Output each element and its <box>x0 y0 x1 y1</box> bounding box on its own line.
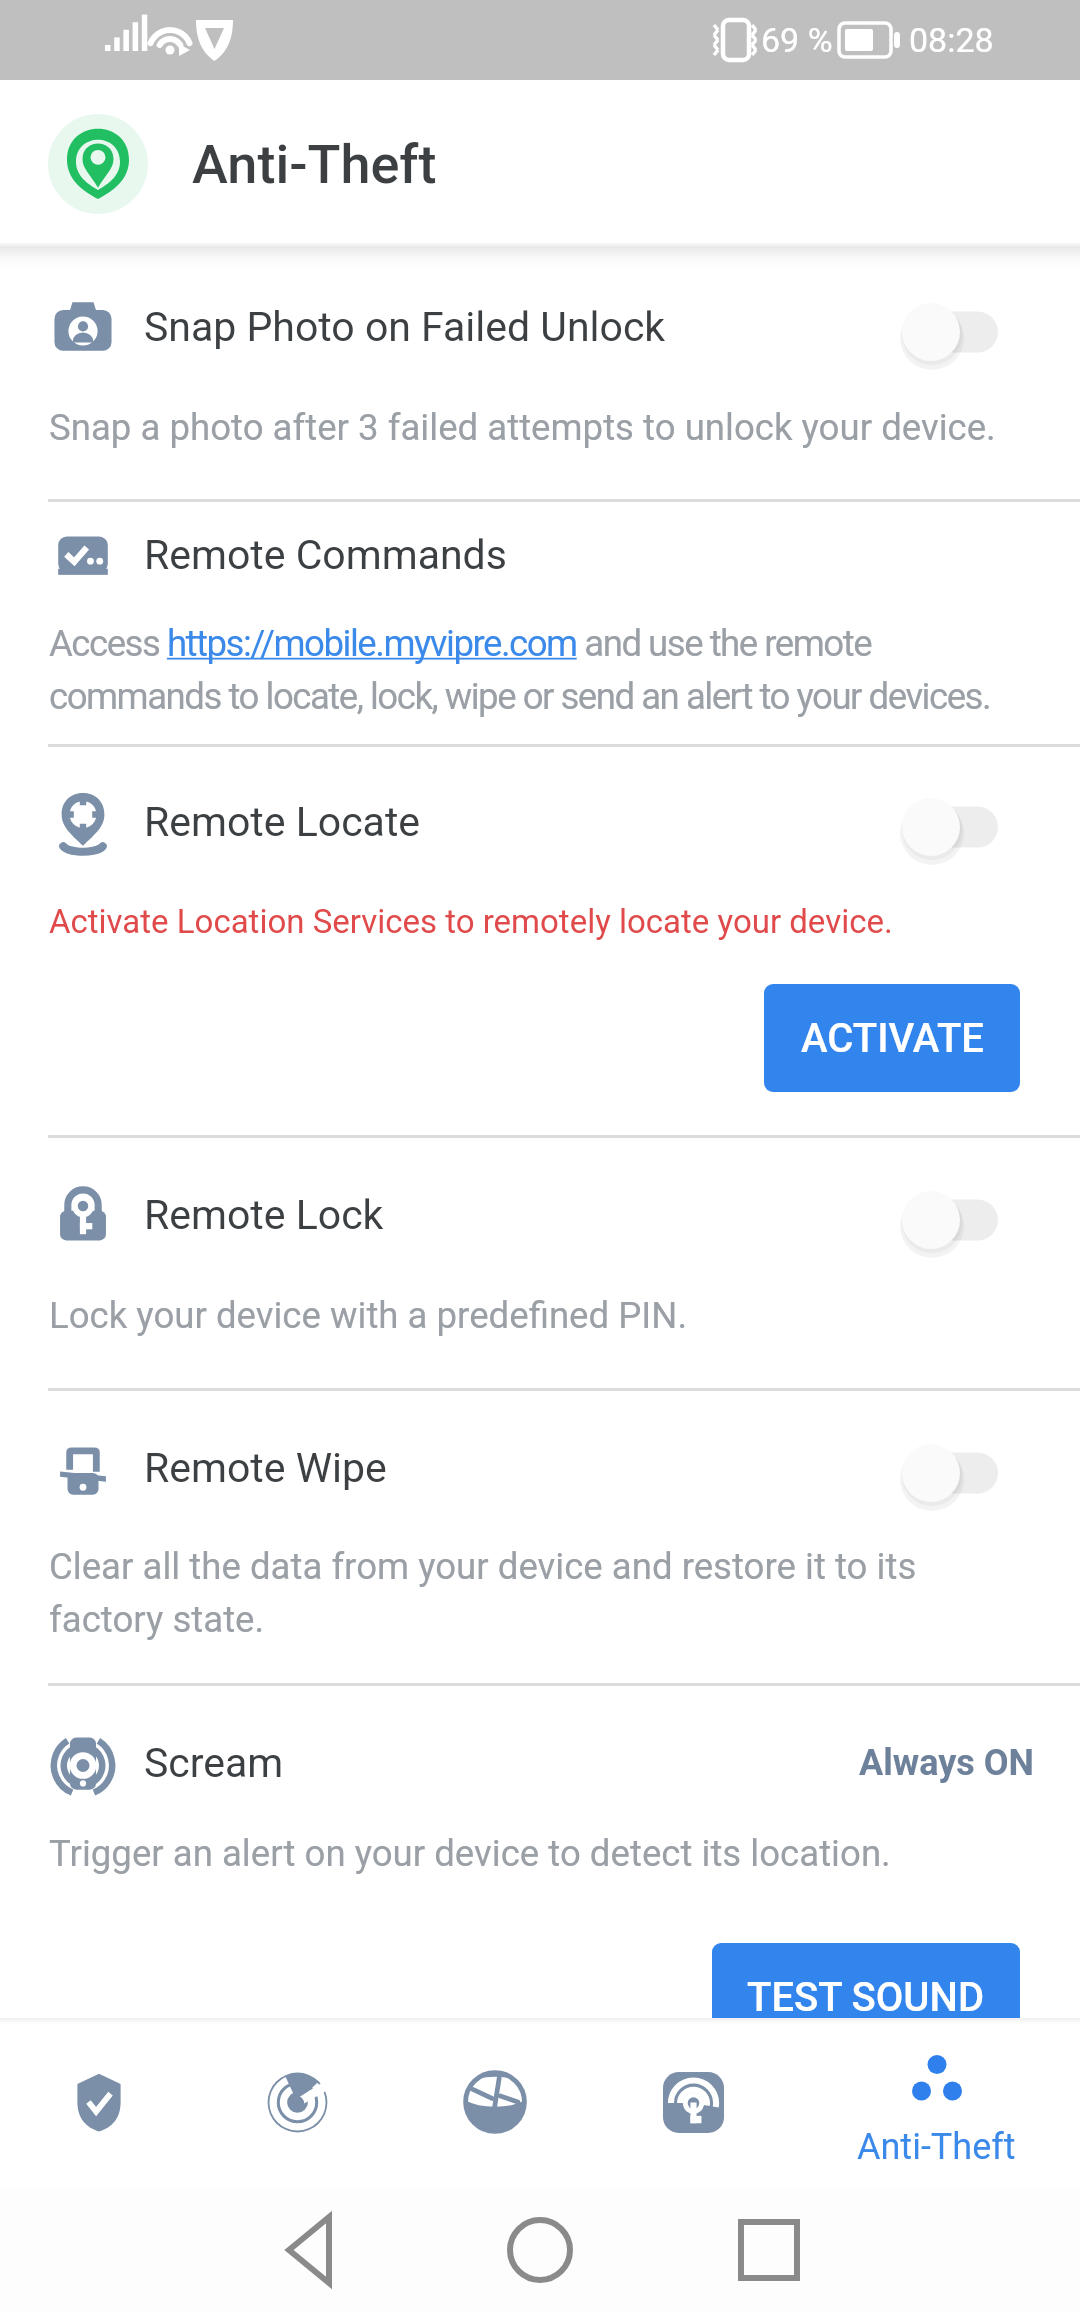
button[interactable]: Remote Commands <box>0 519 1080 591</box>
staticText: TEST SOUND <box>747 1974 985 2021</box>
staticText: 69 % <box>761 20 833 60</box>
button[interactable]: Remote Wipe <box>0 1432 1080 1504</box>
button[interactable]: Toggle <box>914 1179 1034 1251</box>
button[interactable]: ACTIVATE <box>764 984 1020 1092</box>
staticText: Snap Photo on Failed Unlock <box>144 303 666 351</box>
button[interactable]: Snap Photo on Failed Unlock <box>0 291 1080 363</box>
staticText: Snap a photo after 3 failed attempts to … <box>49 406 996 449</box>
staticText: Trigger an alert on your device to detec… <box>49 1832 891 1875</box>
button[interactable]: Privacy <box>594 2018 792 2188</box>
button[interactable]: Scream <box>0 1727 1080 1799</box>
staticText: Always ON <box>859 1742 1034 1784</box>
staticText: Lock your device with a predefined PIN. <box>49 1294 688 1337</box>
button[interactable]: TEST SOUND <box>712 1943 1020 2051</box>
staticText: Remote Lock <box>144 1191 384 1239</box>
staticText: Remote Locate <box>144 798 421 846</box>
staticText: Scream <box>144 1739 284 1787</box>
staticText: Activate Location Services to remotely l… <box>49 902 893 941</box>
staticText: ACTIVATE <box>801 1015 984 1062</box>
button[interactable]: Toggle <box>914 291 1034 363</box>
staticText: Anti-Theft <box>192 133 437 196</box>
staticText: Remote Wipe <box>144 1444 387 1492</box>
button[interactable]: Toggle <box>914 1432 1034 1504</box>
button[interactable]: Scan <box>198 2018 396 2188</box>
button[interactable]: Remote Lock <box>0 1179 1080 1251</box>
button[interactable]: Security <box>0 2018 198 2188</box>
staticText: 08:28 <box>909 20 994 60</box>
button[interactable]: Anti-Theft <box>838 2018 1034 2188</box>
button[interactable]: Remote Locate <box>0 786 1080 858</box>
staticText: Anti-Theft <box>857 2126 1016 2168</box>
button[interactable]: Toggle <box>914 786 1034 858</box>
staticText: Clear all the data from your device and … <box>49 1545 917 1641</box>
staticText: Remote Commands <box>144 531 507 579</box>
staticText: Access https://mobile.myvipre.com and us… <box>49 622 991 718</box>
button[interactable]: Web Protection <box>396 2018 594 2188</box>
